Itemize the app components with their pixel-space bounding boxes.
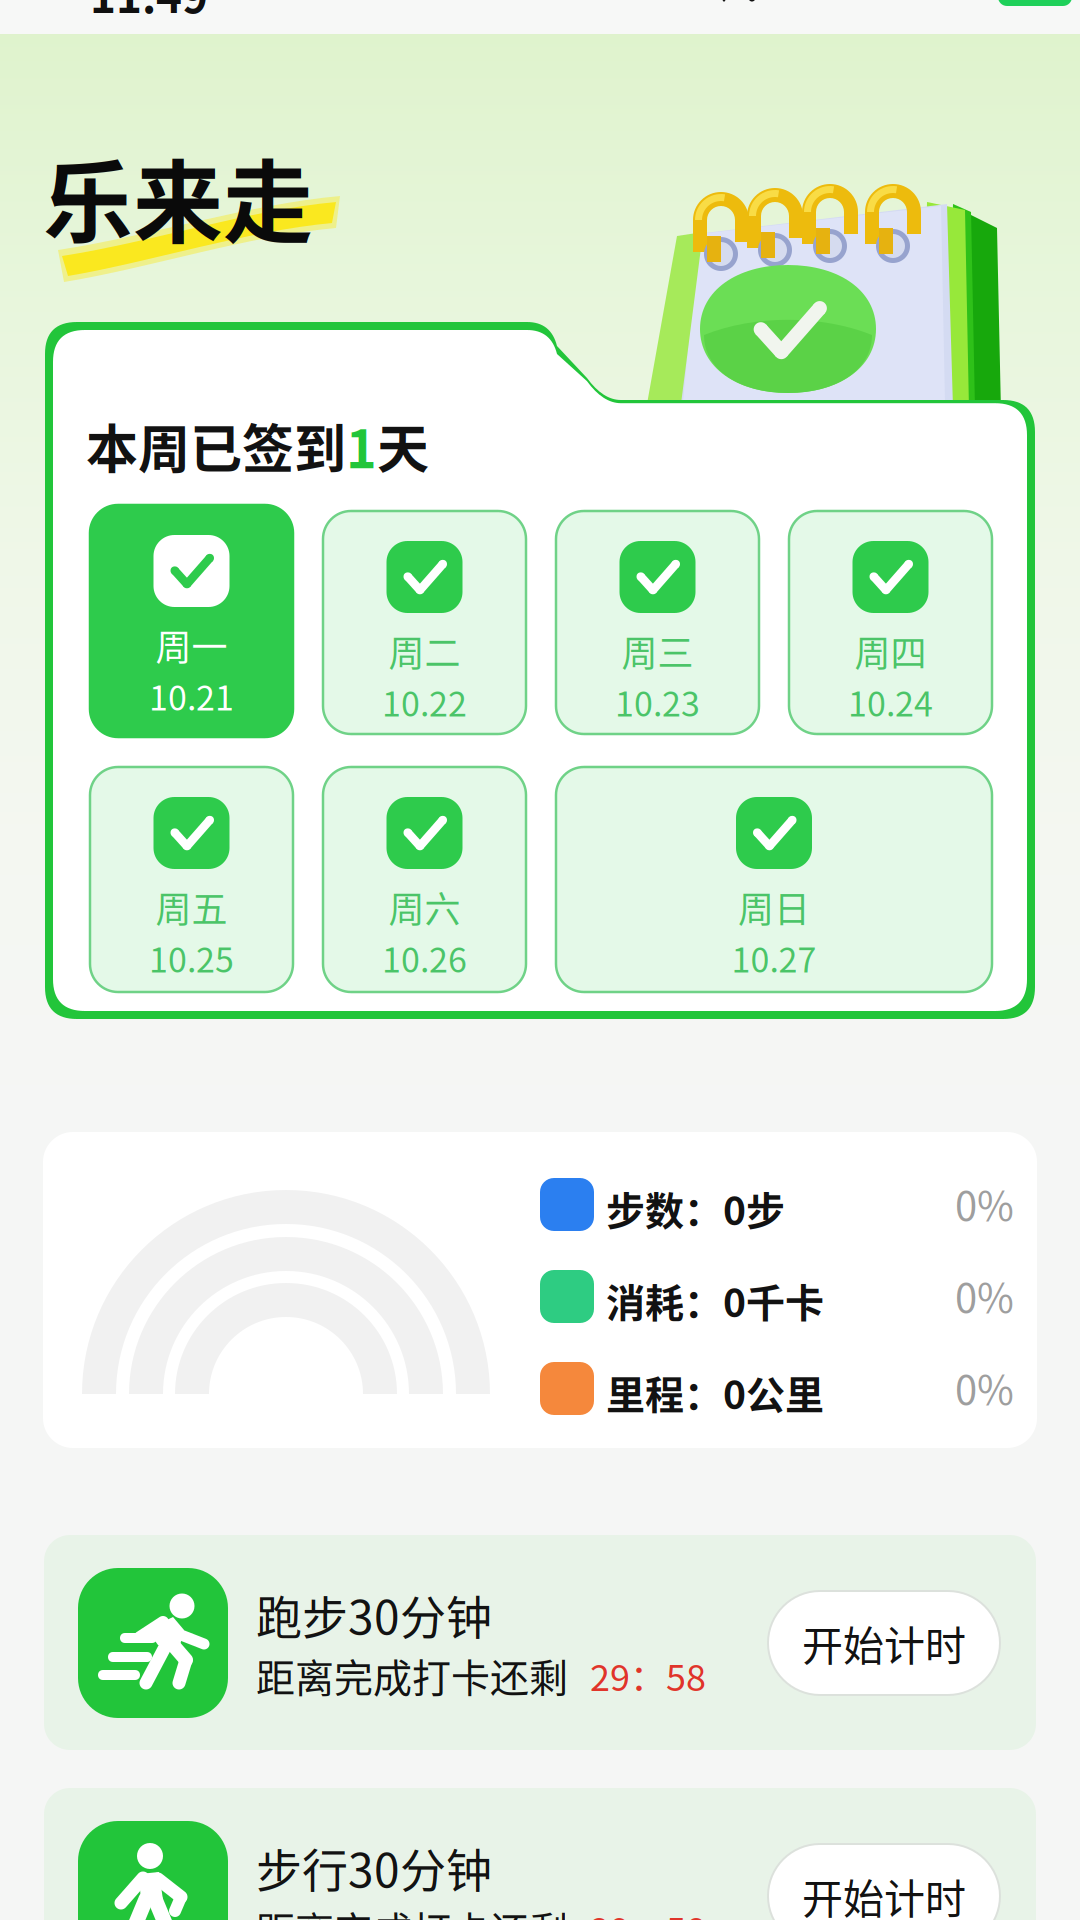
staticText: 10.21: [149, 671, 234, 720]
button[interactable]: 周二: [323, 511, 526, 734]
staticText: 天: [377, 408, 429, 483]
staticText: 周五: [155, 881, 227, 933]
staticText: 周四: [854, 625, 926, 677]
staticText: 本周已签到: [86, 408, 346, 483]
staticText: 乐来走: [43, 131, 313, 261]
button[interactable]: 周六: [323, 767, 526, 992]
staticText: 10.25: [149, 933, 234, 982]
button[interactable]: 周日: [556, 767, 992, 992]
button[interactable]: 周一: [90, 505, 293, 737]
staticText: 0%: [955, 1174, 1014, 1232]
staticText: 周六: [388, 881, 460, 933]
staticText: 开始计时: [802, 1613, 966, 1673]
staticText: 29：58: [590, 1902, 706, 1920]
button[interactable]: 开始计时: [768, 1591, 1000, 1695]
staticText: 11:49: [90, 0, 208, 26]
staticText: 步行30分钟: [256, 1834, 492, 1901]
button[interactable]: 周三: [556, 511, 759, 734]
staticText: 0%: [955, 1358, 1014, 1416]
button[interactable]: 周五: [90, 767, 293, 992]
staticText: 距离完成打卡还剩: [256, 1647, 568, 1703]
staticText: 距离完成打卡还剩: [256, 1900, 568, 1920]
staticText: 10.27: [731, 933, 816, 982]
staticText: 0%: [955, 1266, 1014, 1324]
staticText: 开始计时: [802, 1866, 966, 1920]
staticText: 10.22: [382, 677, 467, 726]
staticText: 1: [346, 408, 377, 483]
staticText: 步数：0步: [606, 1180, 785, 1236]
staticText: 周三: [621, 625, 693, 677]
staticText: 周二: [388, 625, 460, 677]
staticText: 10.24: [848, 677, 933, 726]
staticText: 10.23: [615, 677, 700, 726]
staticText: 消耗：0千卡: [606, 1272, 824, 1328]
staticText: 周日: [738, 881, 810, 933]
staticText: 周一: [155, 619, 227, 671]
staticText: 里程：0公里: [606, 1364, 824, 1420]
staticText: 10.26: [382, 933, 467, 982]
staticText: 跑步30分钟: [256, 1581, 492, 1648]
button[interactable]: 开始计时: [768, 1844, 1000, 1920]
staticText: 29：58: [590, 1649, 706, 1701]
button[interactable]: 周四: [789, 511, 992, 734]
